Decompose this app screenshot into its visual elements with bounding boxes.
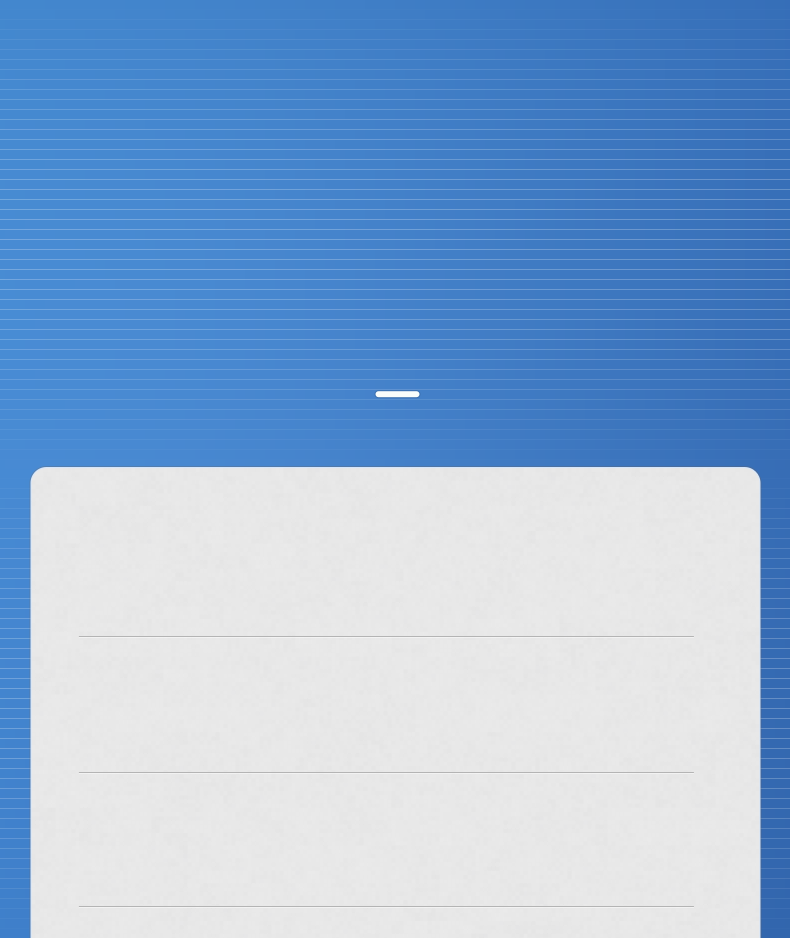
button[interactable]: Row 2 [31, 636, 759, 772]
button[interactable]: Row 3 [31, 772, 759, 906]
button[interactable]: Row 4 [31, 906, 759, 938]
button[interactable]: Row 1 [31, 467, 759, 636]
button[interactable]: Drag to dismiss sheet [374, 389, 420, 399]
